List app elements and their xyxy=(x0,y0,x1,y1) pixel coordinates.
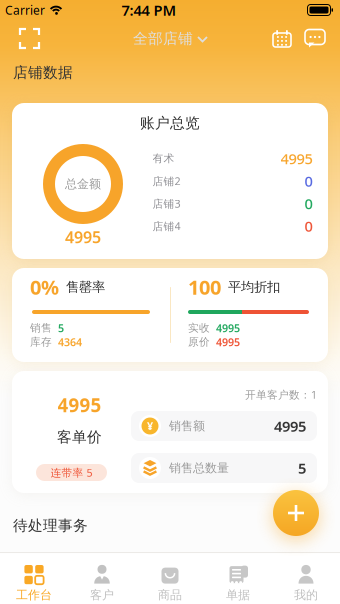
staticText: 全部店铺 xyxy=(133,29,193,47)
staticText: 0 xyxy=(304,216,312,236)
staticText: 4995 xyxy=(216,321,240,335)
staticText: 客户 xyxy=(90,588,114,602)
button[interactable]: 商品 xyxy=(136,553,204,604)
staticText: 客单价 xyxy=(57,428,102,446)
button[interactable] xyxy=(0,29,39,48)
staticText: 有术 xyxy=(152,152,174,165)
button[interactable]: 连带率 5 xyxy=(36,464,107,481)
staticText: 商品 xyxy=(158,588,182,602)
staticText: 工作台 xyxy=(16,588,52,602)
staticText: 我的 xyxy=(294,588,318,602)
staticText: 4995 xyxy=(216,335,240,349)
staticText: 4995 xyxy=(57,393,101,417)
staticText: 4995 xyxy=(65,226,101,248)
button[interactable] xyxy=(273,490,319,536)
staticText: 店铺4 xyxy=(152,219,180,233)
staticText: 库存 xyxy=(30,335,52,348)
button[interactable]: 客户 xyxy=(68,553,136,604)
staticText: 100 xyxy=(188,274,221,300)
button[interactable]: 工作台 xyxy=(0,553,68,604)
button[interactable]: 单据 xyxy=(204,553,272,604)
staticText: 总金额 xyxy=(65,177,101,191)
staticText: 4995 xyxy=(280,149,312,168)
staticText: 5 xyxy=(298,458,306,478)
staticText: 0 xyxy=(304,194,312,213)
staticText: 开单客户数：1 xyxy=(245,387,317,402)
staticText: ¥ xyxy=(147,419,153,433)
staticText: 销售 xyxy=(30,321,52,334)
staticText: 连带率 5 xyxy=(50,465,92,480)
staticText: 店铺数据 xyxy=(13,63,73,81)
staticText: 店铺2 xyxy=(152,174,180,188)
button[interactable]: 全部店铺 xyxy=(133,29,207,47)
staticText: 0 xyxy=(304,171,312,191)
button[interactable]: 我的 xyxy=(272,553,340,604)
staticText: 销售总数量 xyxy=(169,461,229,475)
staticText: 7:44 PM xyxy=(121,0,176,20)
staticText: Carrier xyxy=(5,2,45,18)
staticText: 0% xyxy=(30,274,59,300)
staticText: 待处理事务 xyxy=(13,516,88,534)
staticText: 4364 xyxy=(58,335,82,349)
staticText: 实收 xyxy=(188,321,210,334)
staticText: 账户总览 xyxy=(140,114,200,132)
staticText: 销售额 xyxy=(169,419,205,433)
staticText: 单据 xyxy=(226,588,250,602)
button[interactable] xyxy=(292,28,340,48)
button[interactable] xyxy=(272,29,292,47)
staticText: 店铺3 xyxy=(152,196,180,211)
staticText: 原价 xyxy=(188,335,210,348)
staticText: 4995 xyxy=(274,416,306,436)
staticText: 5 xyxy=(58,321,64,335)
staticText: 售罄率 xyxy=(66,279,105,295)
staticText: 平均折扣 xyxy=(228,279,280,295)
